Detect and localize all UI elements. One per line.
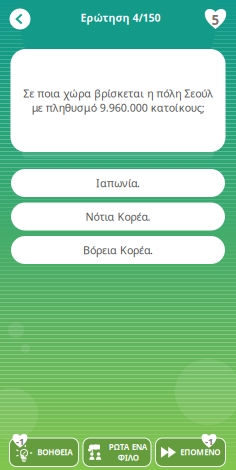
button[interactable]: Ιαπωνία.: [11, 169, 225, 197]
staticText: ΕΠΟΜΕΝΟ: [180, 447, 220, 457]
staticText: ΒΟΗΘΕΙΑ: [37, 447, 73, 457]
button[interactable]: Βόρεια Κορέα.: [11, 236, 225, 264]
button[interactable]: ΕΠΟΜΕΝΟ: [155, 438, 225, 466]
button[interactable]: ΒΟΗΘΕΙΑ: [9, 438, 78, 466]
staticText: ΡΩΤΑ ΕΝΑ ΦΙΛΟ: [108, 442, 147, 463]
staticText: Σε ποια χώρα βρίσκεται η πόλη Σεούλ με π…: [23, 86, 213, 115]
staticText: -1: [205, 435, 213, 448]
staticText: Ερώτηση 4/150: [80, 10, 160, 25]
button[interactable]: ΡΩΤΑ ΕΝΑ ΦΙΛΟ: [83, 438, 151, 466]
staticText: Βόρεια Κορέα.: [83, 243, 153, 257]
staticText: -1: [16, 435, 24, 448]
button[interactable]: Νότια Κορέα.: [11, 202, 225, 230]
staticText: 5: [211, 11, 219, 29]
staticText: Νότια Κορέα.: [85, 209, 150, 224]
button[interactable]: Back: [7, 6, 33, 32]
staticText: Ιαπωνία.: [96, 176, 140, 190]
